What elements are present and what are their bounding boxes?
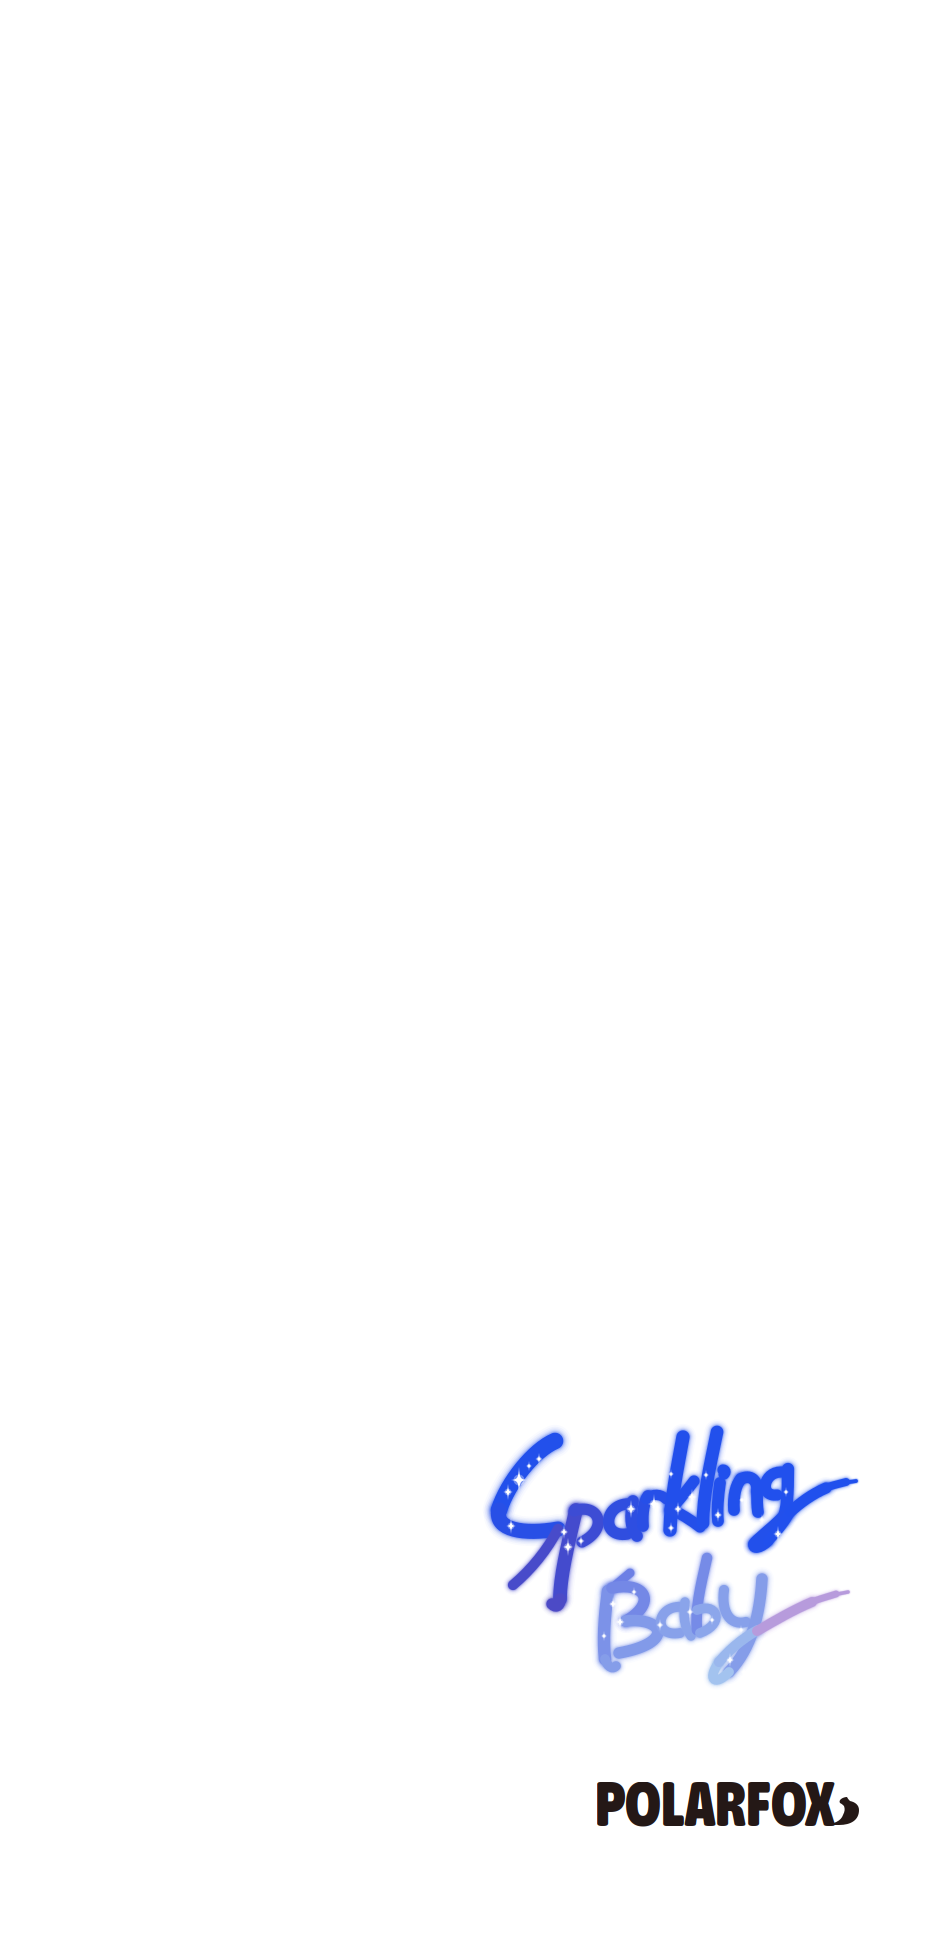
staticText: POLARFOX: [595, 1769, 834, 1839]
button[interactable]: POLARFOX: [0, 0, 940, 1946]
